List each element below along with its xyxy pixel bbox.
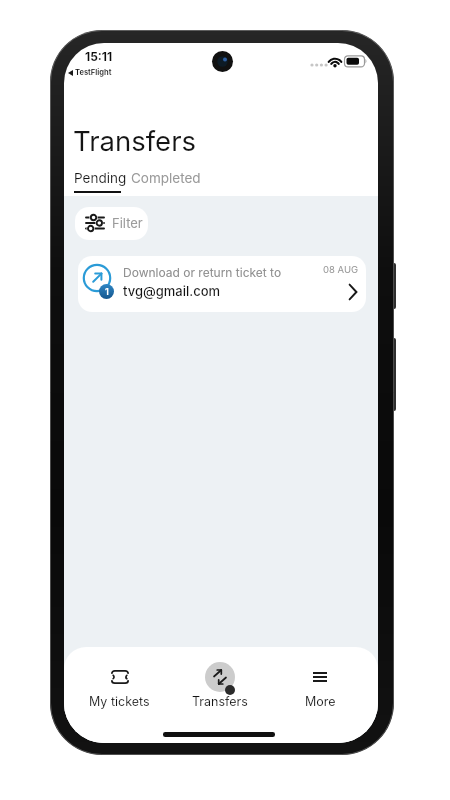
staticText: My tickets <box>89 694 150 709</box>
staticText: More <box>305 694 336 709</box>
staticText: Download or return ticket to <box>123 265 282 280</box>
button[interactable]: 1 <box>78 256 366 312</box>
button[interactable]: My tickets <box>69 647 170 743</box>
button[interactable]: Transfers <box>170 647 270 743</box>
staticText: 1 <box>105 286 109 297</box>
staticText: TestFlight <box>75 68 112 77</box>
button[interactable]: More <box>270 647 370 743</box>
staticText: Transfers <box>192 694 248 709</box>
button[interactable]: Completed <box>131 170 201 186</box>
staticText: tvg@gmail.com <box>123 283 221 299</box>
button[interactable]: Pending <box>74 170 127 186</box>
button[interactable]: Filter <box>75 207 148 240</box>
staticText: 15:11 <box>85 49 113 64</box>
staticText: Transfers <box>73 124 197 157</box>
staticText: 08 AUG <box>323 264 359 275</box>
staticText: Filter <box>112 215 143 231</box>
